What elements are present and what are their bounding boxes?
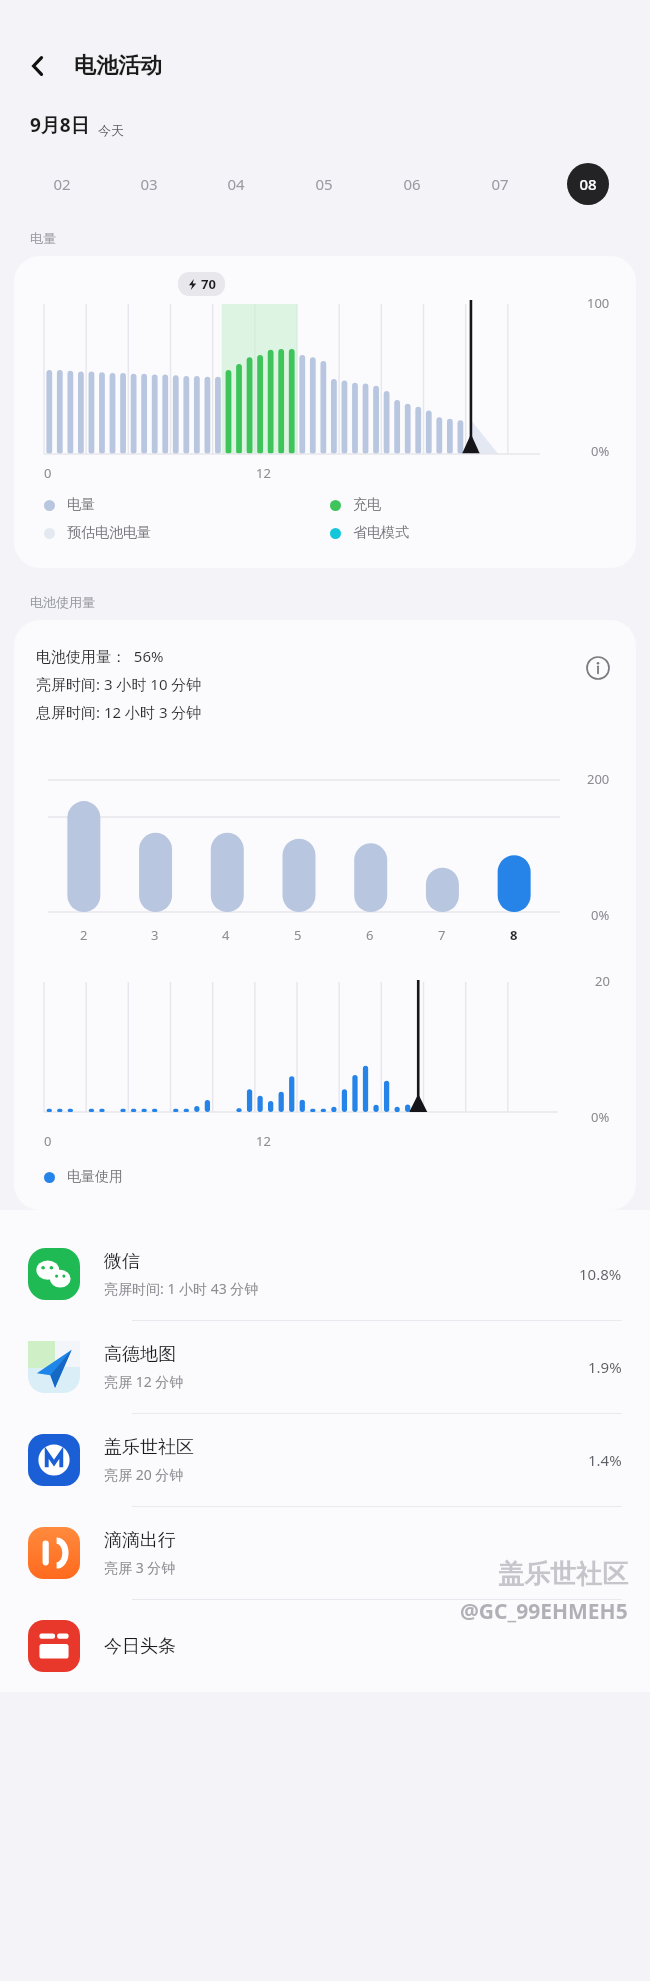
staticText: 8 [510,926,518,944]
button[interactable]: 盖乐世社区 [0,1414,650,1506]
staticText: 微信 [104,1250,140,1273]
button[interactable]: 02 [18,160,105,208]
staticText: 5 [294,926,302,944]
staticText: 0% [591,906,610,924]
staticText: 高德地图 [104,1343,176,1366]
staticText: 亮屏时间: 3 小时 10 分钟 [36,674,202,694]
staticText: 3 [151,926,159,944]
staticText: 亮屏时间: 1 小时 43 分钟 [104,1279,259,1298]
staticText: 今日头条 [104,1635,176,1658]
staticText: 06 [403,174,421,194]
staticText: 10.8% [579,1264,622,1284]
staticText: 亮屏 20 分钟 [104,1465,184,1484]
button[interactable]: Back [14,42,62,90]
staticText: 滴滴出行 [104,1529,176,1552]
staticText: 02 [53,174,71,194]
button[interactable]: 滴滴出行 [0,1507,650,1599]
staticText: 今天 [98,122,124,138]
staticText: 电池活动 [74,52,162,80]
staticText: 息屏时间: 12 小时 3 分钟 [36,702,202,722]
button[interactable]: 07 [456,160,544,208]
staticText: 0% [591,1108,610,1126]
button[interactable]: 04 [192,160,280,208]
button[interactable]: 微信 [0,1228,650,1320]
button[interactable]: 08 [544,160,632,208]
staticText: 07 [491,174,509,194]
staticText: 1.4% [588,1450,622,1470]
staticText: 9月8日 [30,112,90,138]
staticText: 4 [222,926,230,944]
staticText: 6 [366,926,374,944]
staticText: 05 [315,174,333,194]
staticText: 电量使用 [67,1168,123,1186]
staticText: 电量 [67,496,95,514]
staticText: 1.9% [588,1357,622,1377]
staticText: @GC_99EHMEH5 [460,1597,628,1626]
staticText: 0 [44,464,52,482]
staticText: 电池使用量 [30,594,95,610]
staticText: 12 [256,1132,271,1150]
staticText: 预估电池电量 [67,524,151,542]
staticText: 04 [227,174,245,194]
button[interactable]: 高德地图 [0,1321,650,1413]
button[interactable]: Information [578,648,618,688]
staticText: 电池使用量： 56% [36,646,164,666]
staticText: 100 [587,294,610,312]
staticText: 20 [595,972,610,990]
button[interactable]: 03 [105,160,192,208]
staticText: 03 [140,174,158,194]
staticText: 省电模式 [353,524,409,542]
staticText: 亮屏 3 分钟 [104,1558,176,1577]
staticText: 200 [587,770,610,788]
button[interactable]: 100 [14,256,636,568]
staticText: 2 [80,926,88,944]
staticText: 亮屏 12 分钟 [104,1372,184,1391]
staticText: 盖乐世社区 [498,1558,628,1591]
staticText: 12 [256,464,271,482]
staticText: 7 [438,926,446,944]
staticText: 盖乐世社区 [104,1436,194,1459]
staticText: 充电 [353,496,381,514]
staticText: 70 [201,275,216,293]
staticText: 0 [44,1132,52,1150]
staticText: 0% [591,442,610,460]
button[interactable]: 今日头条 [0,1600,650,1692]
button[interactable]: 05 [280,160,368,208]
staticText: 08 [579,174,597,194]
staticText: 电量 [30,230,56,246]
button[interactable]: 06 [368,160,456,208]
